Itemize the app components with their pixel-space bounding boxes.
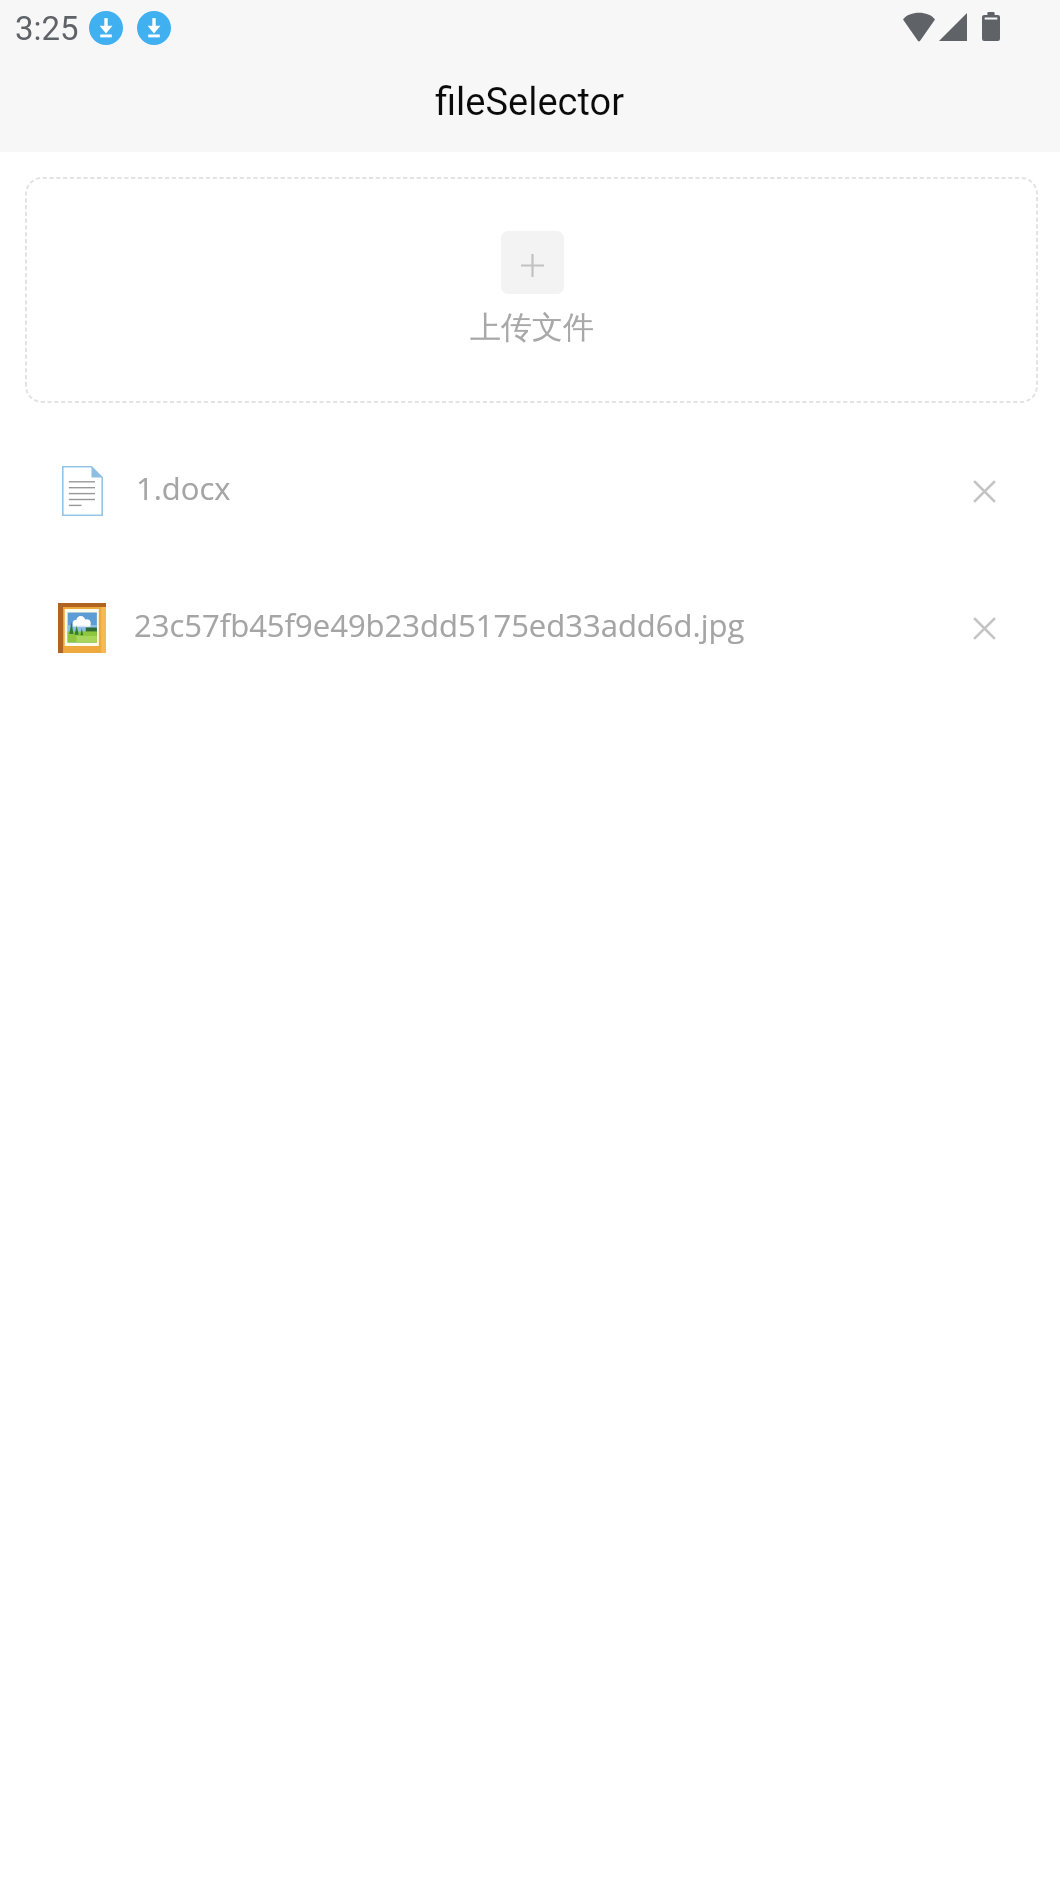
button[interactable]: 23c57fb45f9e49b23dd5175ed33add6d.jpg — [0, 584, 1060, 672]
staticText: fileSelector — [435, 80, 625, 125]
staticText: 上传文件 — [470, 308, 594, 347]
button[interactable]: 上传文件 — [26, 178, 1037, 402]
staticText: 3:25 — [15, 9, 79, 48]
button[interactable]: 1.docx — [0, 447, 1060, 535]
button[interactable]: Remove 1.docx — [951, 458, 1017, 524]
staticText: 23c57fb45f9e49b23dd5175ed33add6d.jpg — [134, 604, 745, 646]
staticText: 1.docx — [136, 467, 231, 509]
button[interactable]: Remove 23c57fb45f9e49b23dd5175ed33add6d.… — [951, 595, 1017, 661]
